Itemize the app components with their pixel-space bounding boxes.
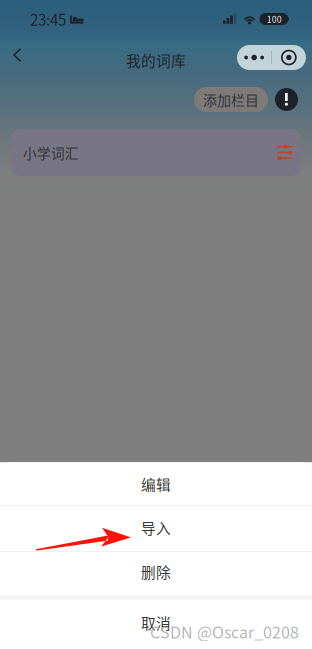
staticText: 添加栏目 [203, 89, 259, 110]
button[interactable]: 删除 [0, 552, 312, 595]
button[interactable]: Back [0, 40, 31, 70]
button[interactable]: 导入 [0, 506, 312, 551]
button[interactable]: 添加栏目 [194, 87, 268, 112]
button[interactable]: Info [275, 88, 298, 111]
button[interactable]: 取消 [0, 600, 312, 649]
staticText: 取消 [141, 612, 171, 633]
button[interactable]: 小学词汇 [11, 129, 301, 176]
staticText: 我的词库 [126, 49, 186, 71]
staticText: CSDN @Oscar_0208 [150, 620, 299, 643]
button[interactable]: More [237, 45, 306, 70]
staticText: 100 [267, 13, 282, 25]
staticText: 编辑 [141, 474, 171, 495]
staticText: 小学词汇 [23, 143, 79, 162]
button[interactable]: 编辑 [0, 462, 312, 505]
staticText: 导入 [141, 517, 171, 538]
staticText: 删除 [141, 561, 171, 582]
staticText: 23:45 [30, 8, 66, 30]
